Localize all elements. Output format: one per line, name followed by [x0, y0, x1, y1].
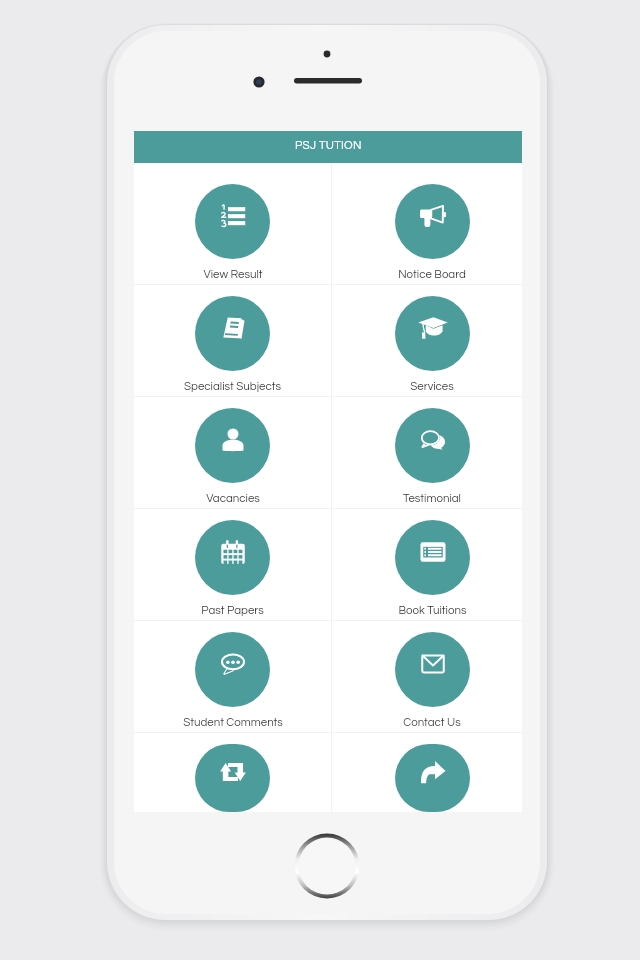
button[interactable]: Notice Board — [332, 163, 522, 284]
button[interactable]: Specialist Subjects — [134, 285, 331, 396]
staticText: Testimonial — [403, 493, 461, 505]
button[interactable]: Book Tuitions — [332, 509, 522, 620]
staticText: View Result — [203, 269, 263, 281]
staticText: Past Papers — [201, 605, 264, 617]
button[interactable]: Action — [134, 733, 331, 812]
button[interactable]: Action — [332, 733, 522, 812]
staticText: Contact Us — [403, 717, 461, 729]
button[interactable]: PSJ TUTION — [134, 131, 522, 163]
button[interactable]: Student Comments — [134, 621, 331, 732]
staticText: Notice Board — [398, 269, 466, 281]
button[interactable]: Services — [332, 285, 522, 396]
staticText: Services — [410, 381, 454, 393]
staticText: PSJ TUTION — [295, 140, 362, 152]
staticText: Book Tuitions — [398, 605, 467, 617]
button[interactable]: Testimonial — [332, 397, 522, 508]
button[interactable]: Past Papers — [134, 509, 331, 620]
button[interactable]: Contact Us — [332, 621, 522, 732]
staticText: Specialist Subjects — [184, 381, 281, 393]
staticText: Student Comments — [183, 717, 283, 729]
button[interactable]: View Result — [134, 163, 331, 284]
staticText: Vacancies — [206, 493, 260, 505]
button[interactable]: Vacancies — [134, 397, 331, 508]
